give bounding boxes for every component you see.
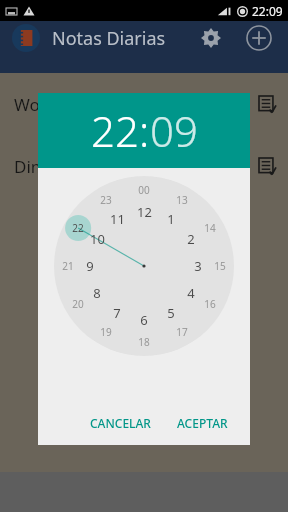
staticText: 16 (204, 297, 216, 311)
staticText: 19 (100, 325, 112, 339)
staticText: 13 (176, 193, 188, 207)
staticText: 10 (90, 230, 105, 248)
staticText: 20 (72, 297, 84, 311)
staticText: Notas Diarias (52, 26, 166, 51)
staticText: 00 (138, 183, 150, 197)
staticText: 3 (194, 257, 202, 275)
button[interactable]: 09 (150, 102, 198, 159)
button[interactable]: Dimensiones (0, 135, 288, 197)
staticText: 21 (62, 259, 74, 273)
button[interactable]: CANCELAR (82, 409, 159, 437)
staticText: 11 (110, 210, 125, 228)
staticText: 22 (72, 221, 84, 235)
staticText: : (139, 102, 150, 159)
staticText: 2 (187, 230, 195, 248)
staticText: 17 (176, 325, 188, 339)
button[interactable]: 22 (91, 102, 139, 159)
staticText: 14 (204, 221, 216, 235)
staticText: 6 (140, 311, 148, 329)
staticText: ACEPTAR (177, 415, 228, 431)
staticText: Workout (14, 93, 83, 116)
staticText: Dimensiones (14, 155, 118, 178)
staticText: 8 (93, 284, 101, 302)
staticText: 7 (113, 304, 121, 322)
button[interactable]: ACEPTAR (169, 409, 236, 437)
staticText: CANCELAR (90, 415, 151, 431)
button[interactable]: Add note (242, 21, 276, 55)
staticText: 22:09 (252, 3, 283, 19)
staticText: 15 (214, 259, 226, 273)
button[interactable]: Workout (0, 73, 288, 135)
staticText: 12 (137, 203, 152, 221)
staticText: 5 (167, 304, 175, 322)
staticText: 1 (167, 210, 175, 228)
staticText: 9 (86, 257, 94, 275)
staticText: 4 (187, 284, 195, 302)
staticText: 18 (138, 335, 150, 349)
button[interactable]: Settings (194, 21, 228, 55)
staticText: 23 (100, 193, 112, 207)
